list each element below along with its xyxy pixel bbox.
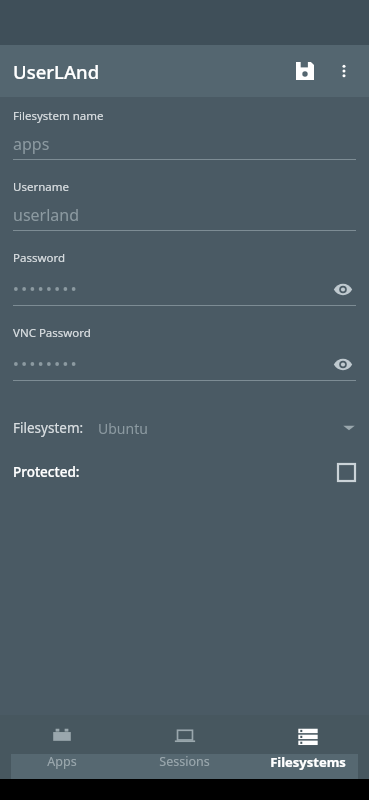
staticText: Filesystems bbox=[270, 753, 346, 771]
button[interactable]: Toggle VNC Password visibility bbox=[330, 351, 356, 377]
staticText: apps bbox=[13, 133, 50, 155]
button[interactable]: Toggle Password visibility bbox=[330, 276, 356, 302]
staticText: Sessions bbox=[159, 753, 210, 770]
button[interactable]: Filesystem name bbox=[0, 108, 369, 179]
staticText: Filesystem: bbox=[13, 419, 84, 437]
staticText: Ubuntu bbox=[98, 419, 148, 438]
button[interactable]: Protected: bbox=[0, 455, 369, 489]
button[interactable]: Filesystems bbox=[246, 715, 369, 779]
button[interactable]: Save bbox=[285, 51, 325, 91]
button[interactable]: Username bbox=[0, 179, 369, 250]
staticText: Apps bbox=[47, 753, 77, 770]
staticText: Username bbox=[13, 179, 69, 195]
staticText: UserLAnd bbox=[13, 59, 100, 84]
button[interactable]: Protected checkbox bbox=[336, 462, 356, 482]
button[interactable]: Password bbox=[0, 250, 369, 325]
button[interactable]: Filesystem: bbox=[0, 411, 369, 445]
staticText: Protected: bbox=[13, 463, 80, 481]
button[interactable]: Apps bbox=[0, 715, 123, 779]
staticText: Password bbox=[13, 250, 66, 266]
staticText: VNC Password bbox=[13, 325, 91, 341]
staticText: userland bbox=[13, 204, 80, 226]
button[interactable]: Sessions bbox=[123, 715, 246, 779]
staticText: Filesystem name bbox=[13, 108, 104, 124]
button[interactable]: More options bbox=[325, 52, 363, 90]
button[interactable]: VNC Password bbox=[0, 325, 369, 400]
